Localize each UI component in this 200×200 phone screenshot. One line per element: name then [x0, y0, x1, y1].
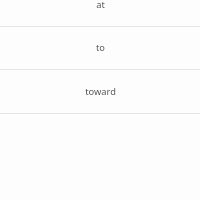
button[interactable]: to [0, 27, 200, 69]
staticText: toward [85, 85, 116, 98]
staticText: at [96, 0, 105, 11]
button[interactable]: at [0, 0, 200, 26]
button[interactable]: toward [0, 70, 200, 113]
staticText: to [96, 41, 105, 54]
